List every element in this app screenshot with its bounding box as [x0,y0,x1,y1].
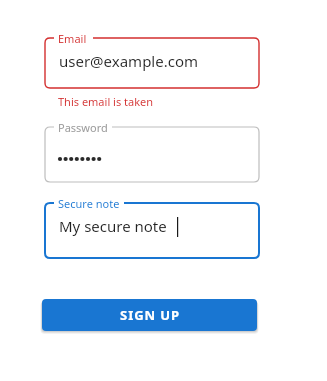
button[interactable] [45,38,259,88]
staticText: Email [58,31,87,46]
staticText: SIGN UP [120,306,180,324]
staticText: This email is taken [58,94,154,109]
staticText: Secure note [58,196,120,211]
button[interactable] [45,127,259,182]
button[interactable] [45,203,259,258]
staticText: user@example.com [59,51,199,71]
staticText: My secure note [59,216,167,236]
staticText: Password [58,120,108,135]
button[interactable]: Sign up [42,299,257,331]
